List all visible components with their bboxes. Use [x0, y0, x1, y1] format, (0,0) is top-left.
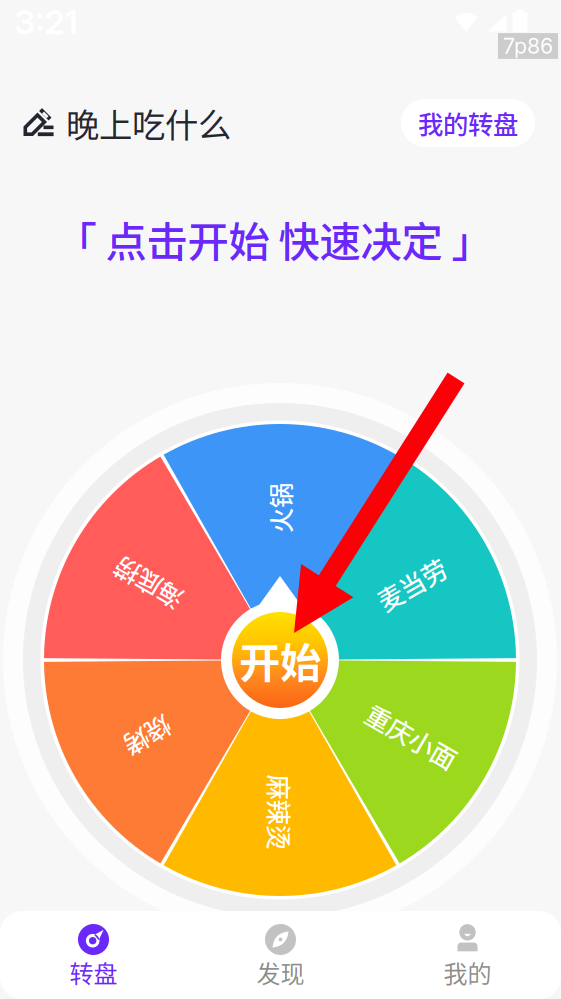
button[interactable]: 开始 [232, 612, 328, 708]
staticText: 我的转盘 [418, 105, 518, 141]
staticText: 我的 [443, 955, 491, 990]
staticText: 「 点击开始 快速决定 」 [55, 209, 492, 269]
staticText: 开始 [239, 630, 321, 690]
staticText: 转盘 [69, 955, 117, 990]
staticText: 麻辣烫 [242, 794, 317, 830]
button[interactable]: Edit [23, 109, 54, 137]
staticText: 7p86 [503, 33, 553, 59]
button[interactable]: 我的 [374, 911, 561, 999]
button[interactable]: 转盘 [0, 911, 187, 999]
staticText: 火锅 [255, 490, 305, 526]
staticText: 麦当劳 [374, 566, 449, 602]
staticText: 晚上吃什么 [66, 99, 231, 147]
staticText: 发现 [256, 955, 304, 990]
staticText: 3:21 [14, 2, 77, 42]
button[interactable]: 发现 [187, 911, 374, 999]
staticText: 烧烤 [123, 718, 173, 754]
button[interactable]: 我的转盘 [401, 99, 535, 147]
staticText: 重庆小面 [362, 718, 462, 754]
staticText: 海底捞 [111, 566, 186, 602]
